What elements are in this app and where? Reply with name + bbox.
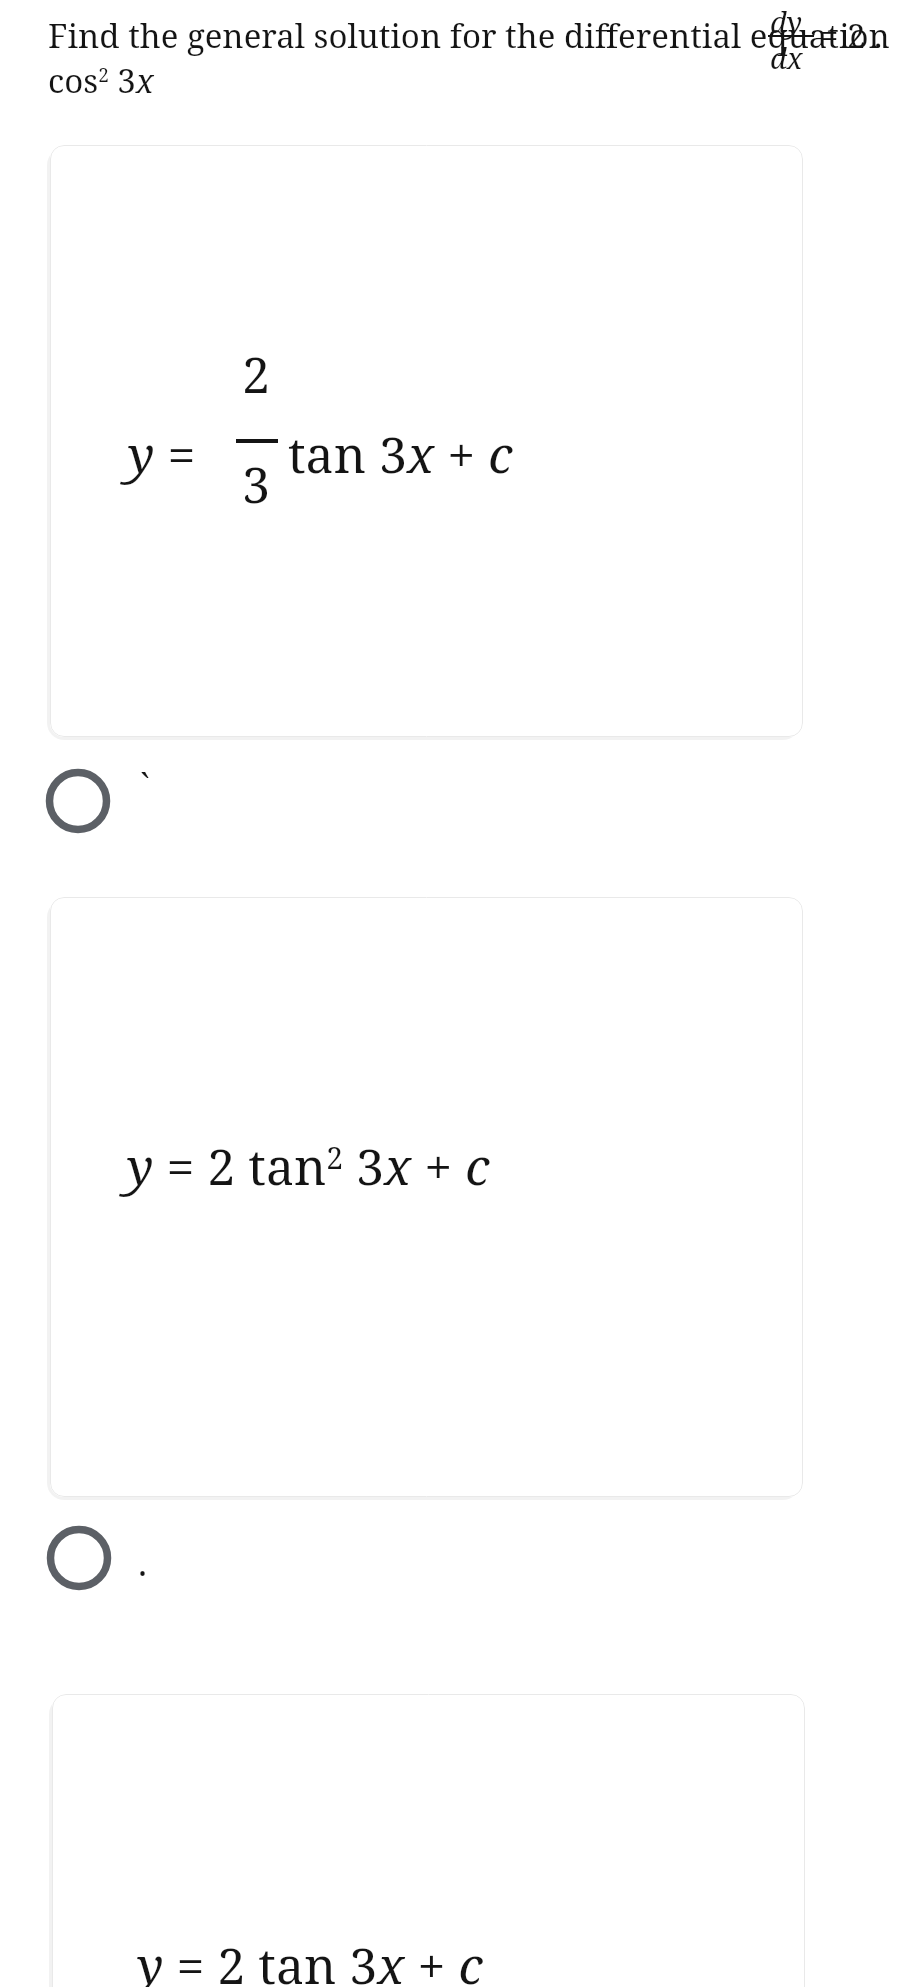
staticText: . bbox=[138, 1538, 147, 1587]
button[interactable]: y = 2 tan 3x + c bbox=[52, 1694, 805, 1987]
staticText: = 2 . bbox=[820, 13, 883, 58]
staticText: y = bbox=[128, 420, 209, 488]
staticText: y = 2 tan2 3x + c bbox=[127, 1132, 490, 1200]
staticText: Find the general solution for the differ… bbox=[48, 13, 907, 103]
button[interactable]: y = bbox=[50, 145, 803, 737]
staticText: dx bbox=[770, 38, 803, 77]
button[interactable]: Select answer 2 bbox=[46, 1525, 112, 1591]
staticText: dy bbox=[770, 2, 803, 41]
staticText: 2 bbox=[242, 340, 270, 408]
staticText: tan 3x + c bbox=[288, 420, 513, 488]
staticText: y = 2 tan 3x + c bbox=[137, 1931, 483, 1987]
staticText: 3 bbox=[242, 450, 270, 518]
button[interactable]: y = 2 tan2 3x + c bbox=[50, 897, 803, 1497]
staticText: ` bbox=[140, 762, 150, 811]
button[interactable]: Select answer 1 bbox=[45, 768, 111, 834]
